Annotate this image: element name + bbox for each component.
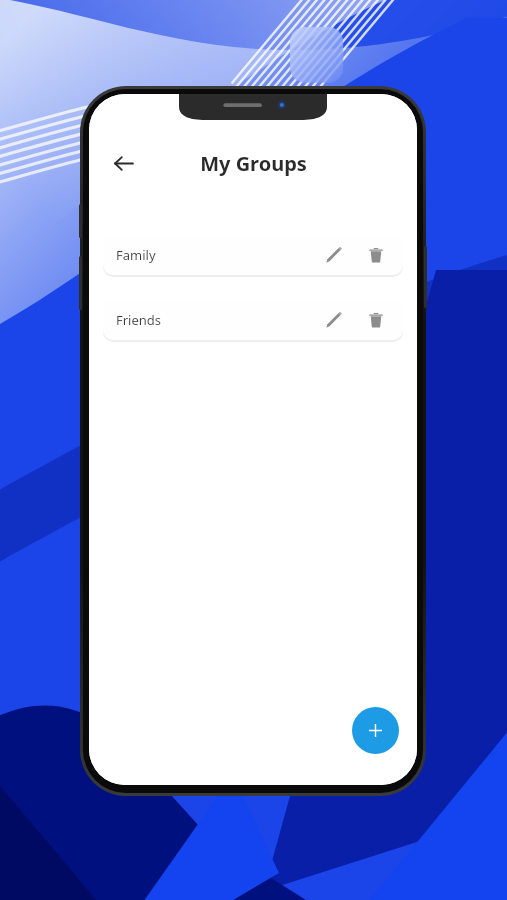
staticText: Friends xyxy=(116,311,162,329)
button[interactable]: Delete Friends xyxy=(359,303,393,337)
staticText: My Groups xyxy=(200,150,307,177)
button[interactable]: Back xyxy=(103,143,143,183)
button[interactable]: Family xyxy=(103,234,403,275)
button[interactable]: Friends xyxy=(103,299,403,340)
button[interactable]: Delete Family xyxy=(359,238,393,272)
button[interactable]: Add group xyxy=(352,707,399,754)
button[interactable]: Edit Family xyxy=(316,238,350,272)
button[interactable]: Edit Friends xyxy=(316,303,350,337)
staticText: Family xyxy=(116,246,156,264)
